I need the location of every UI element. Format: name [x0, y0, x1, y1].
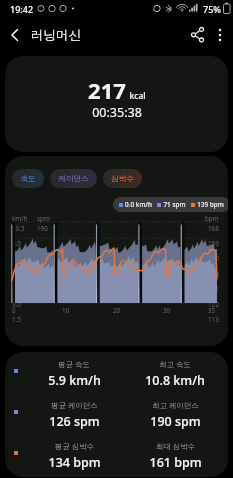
staticText: spm [37, 214, 50, 223]
staticText: 5.9 km/h [48, 372, 101, 389]
staticText: 126 spm [49, 413, 100, 430]
staticText: 190 spm [150, 413, 201, 430]
staticText: 최대 심박수 [156, 441, 195, 451]
staticText: 케이던스 [58, 174, 89, 184]
staticText: 최고 케이던스 [152, 400, 199, 410]
staticText: 최고 속도 [159, 359, 191, 369]
staticText: 4.5 [12, 285, 21, 294]
staticText: 71 spm [163, 200, 186, 209]
button[interactable]: 심박수 [103, 169, 142, 188]
staticText: 168 [208, 224, 219, 233]
staticText: 평균 심박수 [55, 441, 94, 451]
button[interactable]: More options [209, 24, 231, 46]
button[interactable]: Share [187, 24, 209, 46]
staticText: 139 bpm [197, 200, 224, 209]
staticText: 159 [208, 239, 219, 248]
staticText: 러닝머신 [31, 27, 81, 43]
staticText: 131 [208, 285, 219, 294]
staticText: 35 [208, 306, 216, 315]
staticText: 20 [113, 306, 121, 315]
staticText: kcal [129, 90, 146, 102]
staticText: 140 [208, 270, 219, 279]
staticText: 00:35:38 [92, 104, 142, 121]
staticText: 10 [62, 306, 70, 315]
staticText: 19:42 [10, 3, 34, 15]
staticText: 75% [203, 3, 221, 15]
staticText: 0.0 km/h [125, 200, 152, 209]
staticText: 122 [208, 300, 219, 309]
button[interactable]: 평균 심박수 [5, 434, 228, 475]
staticText: 1.5 [12, 315, 21, 324]
staticText: 평균 케이던스 [51, 400, 98, 410]
button[interactable]: 평균 속도 [5, 352, 228, 393]
staticText: 속도 [20, 174, 36, 184]
staticText: 심박수 [111, 174, 134, 184]
staticText: 150 [208, 254, 219, 263]
button[interactable]: Back [4, 24, 26, 46]
staticText: km/h [12, 214, 28, 223]
staticText: 0 [12, 306, 16, 315]
staticText: 10.8 km/h [145, 372, 205, 389]
staticText: 161 bpm [149, 454, 202, 471]
staticText: 190 [37, 224, 48, 233]
staticText: 30 [163, 306, 171, 315]
staticText: 7.5 [12, 254, 21, 263]
staticText: 9.0 [12, 239, 21, 248]
staticText: 10.5 [12, 224, 25, 233]
button[interactable]: 속도 [12, 169, 44, 188]
staticText: 134 bpm [48, 454, 101, 471]
staticText: 평균 속도 [58, 359, 90, 369]
staticText: 3.0 [12, 300, 21, 309]
staticText: 113 [208, 315, 219, 324]
button[interactable]: 217 [5, 56, 228, 152]
button[interactable]: 평균 케이던스 [5, 393, 228, 434]
button[interactable]: 케이던스 [50, 169, 97, 188]
staticText: 6.0 [12, 270, 21, 279]
staticText: 217 [88, 75, 126, 105]
staticText: bpm [205, 214, 219, 223]
